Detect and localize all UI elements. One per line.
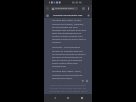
staticText: chat.openai.com/c <box>55 7 74 10</box>
button[interactable]: Share <box>85 79 88 82</box>
button[interactable]: Home <box>65 95 71 101</box>
staticText: Sonnerie Ben Ladies : Merci, Prophète, j… <box>52 70 86 79</box>
button[interactable]: Copy <box>81 79 84 82</box>
button[interactable]: Account <box>46 7 49 10</box>
button[interactable]: New chat <box>87 14 90 17</box>
staticText: Sonnerie Ben Ladies : je vais comme vos … <box>52 19 86 43</box>
button[interactable]: chat.openai.com/c <box>51 7 78 10</box>
button[interactable]: Recents <box>79 95 85 101</box>
staticText: Sonnerie de Demande nide <box>53 14 83 17</box>
button[interactable]: More options <box>87 7 90 10</box>
button[interactable]: Back <box>52 95 58 101</box>
button[interactable]: Menu <box>46 14 49 17</box>
staticText: ChatGPT peut produire des informations i… <box>48 84 88 93</box>
staticText: Mahomet : C'est une bonne décision ce mu… <box>52 46 86 67</box>
button[interactable]: Tabs <box>82 7 85 10</box>
